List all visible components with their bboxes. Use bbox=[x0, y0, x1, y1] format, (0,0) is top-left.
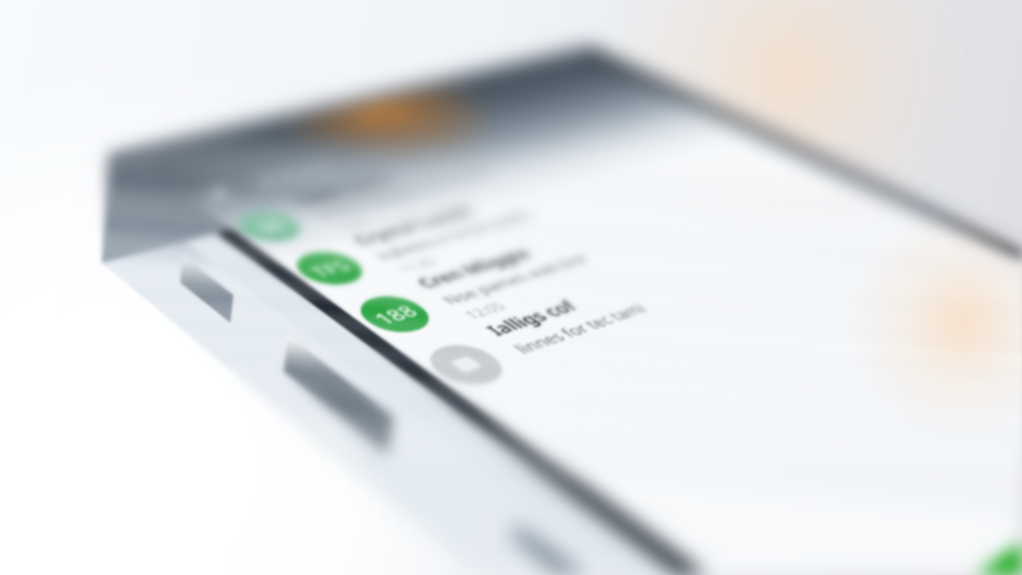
staticText: 11:30 bbox=[391, 255, 442, 276]
button[interactable]: 188 bbox=[329, 157, 875, 349]
staticText: 12:05 bbox=[459, 299, 511, 322]
button[interactable]: TFS bbox=[268, 125, 803, 300]
button[interactable]: Attachment bbox=[397, 191, 953, 403]
staticText: Saala Sama bbox=[288, 172, 399, 208]
staticText: linnes for tec tami bbox=[507, 300, 654, 357]
button[interactable]: TFS bbox=[268, 125, 803, 300]
staticText: Cren Mliggte bbox=[410, 245, 539, 292]
staticText: 11:30 bbox=[391, 255, 442, 276]
button[interactable]: TFS bbox=[268, 125, 803, 300]
other: Attachment bbox=[440, 351, 492, 378]
staticText: 12:05 bbox=[459, 299, 511, 322]
button[interactable]: 188 bbox=[329, 157, 875, 349]
staticText: Cren Mliggte bbox=[410, 245, 539, 292]
staticText: bssist E di uhan wi esnnter bbox=[310, 165, 499, 221]
staticText: TFS bbox=[302, 256, 357, 281]
staticText: bssist E di uhan wi esnnter bbox=[310, 165, 499, 221]
staticText: Ialligs cof bbox=[479, 297, 585, 340]
staticText: 188 bbox=[365, 300, 425, 328]
button[interactable]: TFS bbox=[268, 125, 803, 300]
staticText: bssist E di uhan wi esnnter bbox=[310, 165, 499, 221]
staticText: SS bbox=[249, 216, 291, 236]
button[interactable]: Attachment bbox=[397, 191, 953, 403]
staticText: 12:01 bbox=[330, 214, 378, 233]
button[interactable]: 188 bbox=[329, 157, 875, 349]
staticText: linnes for tec tami bbox=[507, 300, 654, 357]
staticText: SS bbox=[249, 216, 291, 236]
staticText: 188 bbox=[365, 300, 425, 328]
button[interactable]: SS bbox=[211, 95, 736, 255]
button[interactable]: Attachment bbox=[397, 191, 953, 403]
staticText: Ialligs cof bbox=[479, 297, 585, 340]
staticText: 12:01 bbox=[330, 214, 378, 233]
button[interactable]: 188 bbox=[329, 157, 875, 349]
staticText: Cren Mliggte bbox=[410, 245, 539, 292]
button[interactable]: TFS bbox=[268, 125, 803, 300]
staticText: TFS bbox=[302, 256, 357, 281]
button[interactable]: 188 bbox=[329, 157, 875, 349]
staticText: Ialligs cof bbox=[479, 297, 585, 340]
staticText: Noe pames wait tine bbox=[436, 251, 595, 308]
staticText: 12:05 bbox=[459, 299, 511, 322]
button[interactable]: SS bbox=[211, 95, 736, 255]
button[interactable]: Attachment bbox=[397, 191, 953, 403]
staticText: 12:05 bbox=[459, 299, 511, 322]
staticText: Saala Sama bbox=[288, 172, 399, 208]
staticText: Noe pames wait tine bbox=[436, 251, 595, 308]
button[interactable]: SS bbox=[211, 95, 736, 255]
button[interactable]: SS bbox=[211, 95, 736, 255]
staticText: 12:01 bbox=[330, 214, 378, 233]
staticText: TFS bbox=[302, 256, 357, 281]
staticText: linnes for tec tami bbox=[507, 300, 654, 357]
staticText: bssist E di uhan wi esnnter bbox=[310, 165, 499, 221]
button[interactable]: 188 bbox=[329, 157, 875, 349]
staticText: 12:01 bbox=[330, 214, 378, 233]
staticText: 11:30 bbox=[391, 255, 442, 276]
staticText: TFS bbox=[302, 256, 357, 281]
other: Attachment bbox=[440, 351, 492, 378]
button[interactable]: SS bbox=[211, 95, 736, 255]
staticText: bssist E di uhan wi esnnter bbox=[310, 165, 499, 221]
staticText: kqhesss e Gmerutewts bbox=[370, 207, 539, 263]
staticText: SS bbox=[249, 216, 291, 236]
button[interactable]: Attachment bbox=[397, 191, 953, 403]
button[interactable]: Attachment bbox=[397, 191, 953, 403]
staticText: 11:30 bbox=[391, 255, 442, 276]
staticText: Saala Sama bbox=[288, 172, 399, 208]
button[interactable]: SS bbox=[211, 95, 736, 255]
staticText: 12:05 bbox=[459, 299, 511, 322]
staticText: Cren Mliggte bbox=[410, 245, 539, 292]
button[interactable]: TFS bbox=[268, 125, 803, 300]
button[interactable]: 188 bbox=[329, 157, 875, 349]
staticText: Saala Sama bbox=[288, 172, 399, 208]
button[interactable]: SS bbox=[211, 95, 736, 255]
button[interactable]: Attachment bbox=[397, 191, 953, 403]
button[interactable]: 188 bbox=[329, 157, 875, 349]
button[interactable]: SS bbox=[211, 95, 736, 255]
button[interactable]: TFS bbox=[268, 125, 803, 300]
other: Attachment bbox=[440, 351, 492, 378]
button[interactable]: TFS bbox=[268, 125, 803, 300]
staticText: linnes for tec tami bbox=[507, 300, 654, 357]
button[interactable]: SS bbox=[211, 95, 736, 255]
staticText: 12:05 bbox=[459, 299, 511, 322]
staticText: TFS bbox=[302, 256, 357, 281]
staticText: Crystal Lucien bbox=[347, 203, 481, 248]
staticText: Crystal Lucien bbox=[347, 203, 481, 248]
button[interactable]: TFS bbox=[268, 125, 803, 300]
staticText: bssist E di uhan wi esnnter bbox=[310, 165, 499, 221]
staticText: SS bbox=[249, 216, 291, 236]
staticText: linnes for tec tami bbox=[507, 300, 654, 357]
staticText: 11:30 bbox=[391, 255, 442, 276]
staticText: Saala Sama bbox=[288, 172, 399, 208]
button[interactable]: Attachment bbox=[397, 191, 953, 403]
button[interactable]: Attachment bbox=[397, 191, 953, 403]
staticText: Ialligs cof bbox=[479, 297, 585, 340]
staticText: Cren Mliggte bbox=[410, 245, 539, 292]
staticText: 188 bbox=[365, 300, 425, 328]
staticText: Ialligs cof bbox=[479, 297, 585, 340]
staticText: Crystal Lucien bbox=[347, 203, 481, 248]
staticText: kqhesss e Gmerutewts bbox=[370, 207, 539, 263]
staticText: 12:05 bbox=[459, 299, 511, 322]
button[interactable]: 188 bbox=[329, 157, 875, 349]
